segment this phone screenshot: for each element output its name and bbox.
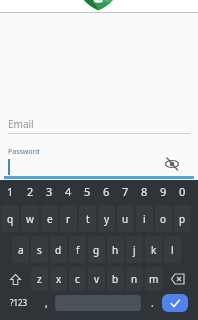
button[interactable]: e [41, 205, 58, 232]
staticText: c [75, 272, 80, 286]
staticText: 7 [122, 184, 129, 199]
staticText: ?123 [10, 297, 28, 308]
staticText: m [149, 272, 159, 286]
staticText: u [122, 212, 129, 226]
staticText: 2 [27, 184, 34, 199]
button[interactable]: 5 [79, 182, 96, 201]
button[interactable]: g [88, 236, 105, 263]
button[interactable]: q [1, 205, 19, 232]
button[interactable]: 4 [60, 182, 77, 201]
staticText: . [151, 296, 154, 310]
staticText: w [26, 212, 34, 226]
button[interactable]: l [164, 236, 181, 263]
button[interactable]: r [60, 205, 77, 232]
staticText: 9 [160, 184, 167, 199]
staticText: 5 [84, 184, 91, 199]
button[interactable]: 9 [155, 182, 172, 201]
button[interactable]: 8 [136, 182, 153, 201]
staticText: e [47, 212, 53, 226]
button[interactable]: 2 [21, 182, 39, 201]
staticText: o [160, 212, 167, 226]
button[interactable] [164, 267, 191, 291]
staticText: j [133, 243, 136, 257]
staticText: r [66, 212, 71, 226]
button[interactable]: k [145, 236, 162, 263]
button[interactable]: n [126, 267, 143, 291]
button[interactable]: u [117, 205, 134, 232]
button[interactable]: y [98, 205, 115, 232]
staticText: h [112, 243, 119, 257]
button[interactable]: c [69, 267, 86, 291]
button[interactable]: v [88, 267, 105, 291]
button[interactable]: b [107, 267, 124, 291]
button[interactable]: o [155, 205, 172, 232]
staticText: g [93, 243, 100, 257]
button[interactable]: , [38, 293, 55, 320]
button[interactable]: i [136, 205, 153, 232]
button[interactable]: 0 [174, 182, 191, 201]
button[interactable]: h [107, 236, 124, 263]
button[interactable]: 7 [117, 182, 134, 201]
staticText: 6 [103, 184, 110, 199]
button[interactable] [1, 267, 29, 291]
staticText: s [37, 243, 42, 257]
staticText: l [171, 243, 174, 257]
staticText: a [18, 243, 24, 257]
button[interactable]: x [50, 267, 67, 291]
button[interactable]: s [31, 236, 48, 263]
staticText: f [76, 243, 80, 257]
button[interactable]: 3 [41, 182, 58, 201]
button[interactable] [55, 293, 141, 320]
staticText: q [7, 212, 14, 226]
button[interactable]: . [141, 293, 158, 320]
staticText: Password [8, 147, 40, 157]
staticText: 1 [7, 184, 14, 199]
button[interactable]: Password [8, 147, 40, 157]
button[interactable]: a [12, 236, 29, 263]
button[interactable]: j [126, 236, 143, 263]
staticText: d [55, 243, 62, 257]
button[interactable]: ?123 [0, 293, 38, 320]
button[interactable]: w [21, 205, 39, 232]
button[interactable]: t [79, 205, 96, 232]
staticText: Email [8, 117, 34, 131]
button[interactable]: z [31, 267, 48, 291]
staticText: n [131, 272, 138, 286]
staticText: b [112, 272, 119, 286]
button[interactable]: 1 [1, 182, 19, 201]
staticText: 0 [179, 184, 186, 199]
staticText: t [86, 212, 90, 226]
staticText: v [94, 272, 100, 286]
staticText: x [56, 272, 62, 286]
staticText: y [104, 212, 110, 226]
staticText: z [37, 272, 42, 286]
staticText: i [143, 212, 146, 226]
staticText: 3 [46, 184, 53, 199]
button[interactable]: Email [8, 117, 34, 131]
button[interactable]: d [50, 236, 67, 263]
staticText: , [45, 296, 48, 310]
button[interactable]: m [145, 267, 162, 291]
staticText: k [151, 243, 157, 257]
button[interactable] [160, 152, 184, 176]
button[interactable] [162, 294, 188, 312]
staticText: 4 [65, 184, 72, 199]
button[interactable]: 6 [98, 182, 115, 201]
button[interactable]: f [69, 236, 86, 263]
button[interactable]: p [174, 205, 191, 232]
staticText: p [179, 212, 186, 226]
staticText: 8 [141, 184, 148, 199]
